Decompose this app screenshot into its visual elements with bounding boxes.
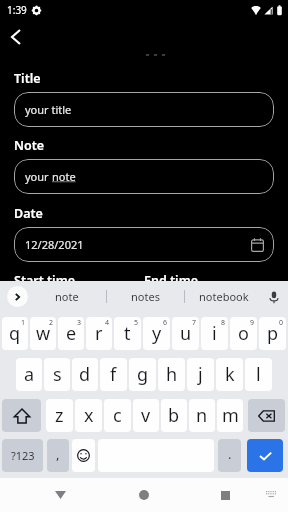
staticText: t xyxy=(124,321,131,346)
button[interactable]: w xyxy=(30,317,56,350)
button[interactable]: Comma xyxy=(47,439,69,472)
button[interactable]: v xyxy=(133,399,159,432)
staticText: c xyxy=(113,403,122,428)
button[interactable]: b xyxy=(161,399,187,432)
button[interactable]: More suggestions xyxy=(7,286,28,307)
button[interactable]: c xyxy=(104,399,131,432)
staticText: j xyxy=(198,362,203,387)
button[interactable]: f xyxy=(100,358,127,391)
staticText: 5 xyxy=(134,318,139,328)
button[interactable]: 12/28/2021 xyxy=(14,227,274,262)
staticText: e xyxy=(66,321,77,346)
staticText: 2 xyxy=(49,318,54,328)
staticText: notes xyxy=(131,289,160,304)
staticText: Start time xyxy=(14,272,75,289)
staticText: your xyxy=(25,169,52,184)
staticText: 4 xyxy=(105,318,110,328)
button[interactable]: a xyxy=(16,358,42,391)
button[interactable]: Voice input xyxy=(262,285,286,309)
button[interactable]: Emoji xyxy=(72,439,95,472)
button[interactable]: Home xyxy=(131,482,157,508)
staticText: x xyxy=(84,403,94,428)
button[interactable]: your title xyxy=(14,92,274,127)
staticText: z xyxy=(55,403,64,428)
staticText: 1:39 xyxy=(7,3,27,17)
staticText: d xyxy=(79,362,91,387)
staticText: r xyxy=(95,321,103,346)
button[interactable]: ?123 xyxy=(2,439,43,472)
staticText: m xyxy=(222,403,239,428)
button[interactable]: u xyxy=(172,317,199,350)
staticText: Date xyxy=(14,205,43,222)
staticText: a xyxy=(24,362,35,387)
button[interactable]: Shift xyxy=(2,399,41,432)
button[interactable]: t xyxy=(114,317,141,350)
button[interactable]: Enter xyxy=(247,439,283,472)
staticText: g xyxy=(137,362,149,387)
button[interactable]: notebook xyxy=(185,281,262,312)
staticText: b xyxy=(168,403,180,428)
staticText: note xyxy=(52,169,76,184)
button[interactable]: n xyxy=(189,399,215,432)
staticText: y xyxy=(152,321,162,346)
staticText: 3 xyxy=(77,318,82,328)
staticText: your title xyxy=(25,102,72,117)
staticText: 12/28/2021 xyxy=(25,237,84,252)
button[interactable]: Period xyxy=(218,439,241,472)
button[interactable]: h xyxy=(158,358,185,391)
staticText: n xyxy=(196,403,208,428)
button[interactable]: z xyxy=(46,399,73,432)
button[interactable]: j xyxy=(187,358,214,391)
staticText: notebook xyxy=(199,289,249,304)
button[interactable]: m xyxy=(217,399,243,432)
button[interactable]: notes xyxy=(107,281,184,312)
staticText: h xyxy=(166,362,178,387)
staticText: 0 xyxy=(279,318,284,328)
staticText: u xyxy=(180,321,192,346)
button[interactable]: x xyxy=(75,399,102,432)
staticText: o xyxy=(238,321,249,346)
button[interactable]: d xyxy=(72,358,98,391)
button[interactable]: o xyxy=(230,317,257,350)
staticText: , xyxy=(56,445,60,463)
button[interactable]: Back xyxy=(47,482,73,508)
staticText: ?123 xyxy=(11,448,35,463)
button[interactable]: Back xyxy=(4,25,28,49)
staticText: q xyxy=(9,321,21,346)
staticText: w xyxy=(36,321,51,346)
button[interactable]: k xyxy=(216,358,243,391)
button[interactable]: l xyxy=(245,358,272,391)
staticText: End time xyxy=(144,272,198,289)
staticText: f xyxy=(110,362,117,387)
button[interactable]: g xyxy=(129,358,156,391)
button[interactable]: p xyxy=(259,317,286,350)
button[interactable]: s xyxy=(44,358,70,391)
staticText: k xyxy=(225,362,235,387)
staticText: note xyxy=(55,289,79,304)
button[interactable]: note xyxy=(28,281,106,312)
button[interactable]: Backspace xyxy=(248,399,285,432)
staticText: p xyxy=(267,321,279,346)
button[interactable]: your xyxy=(14,159,274,194)
button[interactable]: y xyxy=(143,317,170,350)
button[interactable]: r xyxy=(86,317,112,350)
staticText: Title xyxy=(14,70,41,87)
staticText: 1 xyxy=(21,318,26,328)
staticText: 6 xyxy=(163,318,168,328)
staticText: v xyxy=(141,403,151,428)
staticText: i xyxy=(212,321,217,346)
button[interactable]: e xyxy=(58,317,84,350)
staticText: l xyxy=(256,362,261,387)
staticText: 7 xyxy=(192,318,197,328)
button[interactable]: i xyxy=(201,317,228,350)
button[interactable]: Switch keyboard xyxy=(261,485,281,505)
staticText: Note xyxy=(14,137,45,154)
staticText: 9 xyxy=(250,318,255,328)
staticText: . xyxy=(228,445,232,463)
button[interactable]: q xyxy=(2,317,28,350)
button[interactable]: Recents xyxy=(212,482,238,508)
staticText: 8 xyxy=(221,318,226,328)
staticText: s xyxy=(53,362,62,387)
